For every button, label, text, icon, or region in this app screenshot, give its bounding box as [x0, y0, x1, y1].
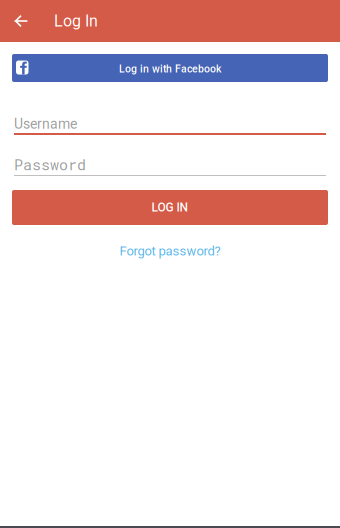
staticText: LOG IN [151, 200, 188, 215]
button[interactable]: Forgot password? [0, 240, 340, 262]
staticText: Log In [54, 12, 98, 30]
staticText: Forgot password? [119, 243, 220, 259]
button[interactable]: Back [0, 0, 42, 42]
button[interactable]: Log in with Facebook [12, 54, 328, 82]
button[interactable]: LOG IN [12, 190, 328, 225]
staticText: Username [14, 116, 77, 132]
staticText: Log in with Facebook [119, 63, 221, 75]
staticText: Password [14, 155, 86, 174]
